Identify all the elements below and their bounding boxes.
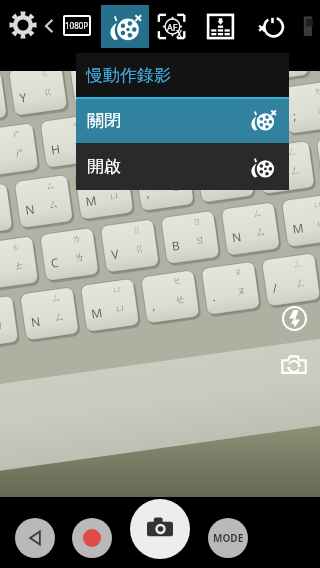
button[interactable]: Record video [72,518,112,558]
button[interactable]: Auto focus off [157,13,188,40]
staticText: 開啟 [87,156,121,177]
staticText: MODE [213,531,244,545]
staticText: 1080P [65,20,89,31]
button[interactable]: 開啟 [76,143,289,190]
button[interactable]: Slow motion [101,5,149,48]
button[interactable]: Shutter [130,499,190,559]
button[interactable]: Timer off [255,12,286,41]
button[interactable]: Flash [282,306,307,331]
staticText: 慢動作錄影 [86,65,171,86]
button[interactable]: Settings [8,10,38,40]
button[interactable]: Collapse [40,12,60,40]
button[interactable]: 關閉 [76,97,289,143]
button[interactable]: Gallery [15,518,55,558]
button[interactable]: MODE [208,518,248,558]
button[interactable]: Exposure [205,13,236,40]
button[interactable]: More [302,14,320,38]
button[interactable]: Switch camera [281,352,307,378]
button[interactable]: Video resolution 1080P [63,15,91,36]
staticText: 關閉 [87,110,121,131]
